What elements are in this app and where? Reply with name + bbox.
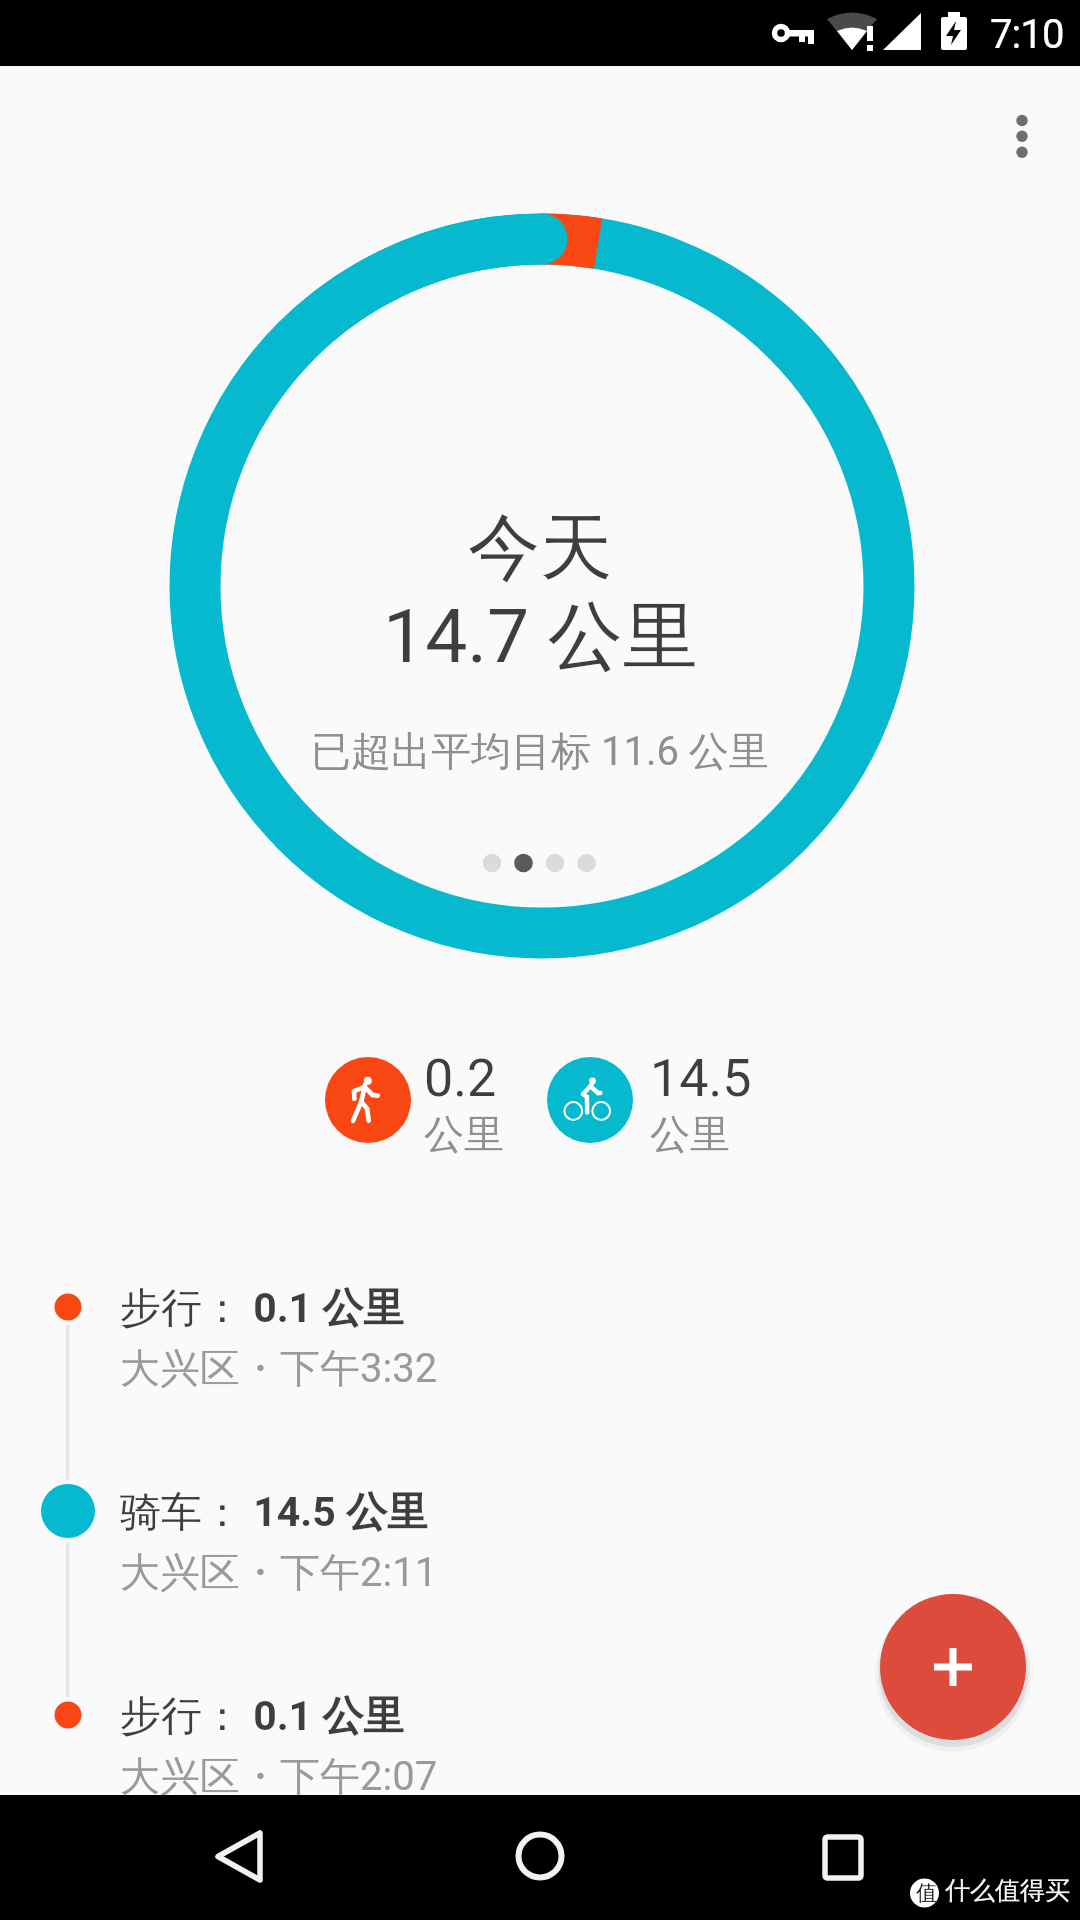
- staticText: 步行： 0.1 公里: [120, 1691, 405, 1743]
- staticText: 0.2: [424, 1048, 497, 1109]
- staticText: 大兴区・下午2:11: [120, 1547, 438, 1597]
- staticText: 大兴区・下午2:07: [120, 1751, 438, 1801]
- button[interactable]: [185, 1803, 293, 1911]
- staticText: 大兴区・下午3:32: [120, 1343, 438, 1393]
- staticText: 值: [916, 1880, 937, 1906]
- button[interactable]: 步行： 0.1 公里: [120, 1283, 438, 1393]
- staticText: 公里: [424, 1109, 504, 1159]
- button[interactable]: [547, 1057, 633, 1143]
- staticText: 7:10: [990, 11, 1064, 58]
- staticText: 已超出平均目标 11.6 公里: [311, 726, 769, 776]
- button[interactable]: [486, 1803, 594, 1911]
- staticText: 什么值得买: [945, 1875, 1070, 1906]
- staticText: 14.7 公里: [383, 590, 698, 684]
- button[interactable]: 步行： 0.1 公里: [120, 1691, 438, 1801]
- staticText: 步行： 0.1 公里: [120, 1283, 405, 1335]
- button[interactable]: [994, 108, 1050, 164]
- staticText: 骑车： 14.5 公里: [120, 1487, 428, 1539]
- staticText: 14.5: [650, 1048, 752, 1109]
- button[interactable]: [880, 1594, 1026, 1740]
- button[interactable]: [788, 1803, 896, 1911]
- button[interactable]: 骑车： 14.5 公里: [120, 1487, 438, 1597]
- staticText: 今天: [468, 503, 612, 594]
- staticText: 公里: [650, 1109, 730, 1159]
- button[interactable]: [325, 1057, 411, 1143]
